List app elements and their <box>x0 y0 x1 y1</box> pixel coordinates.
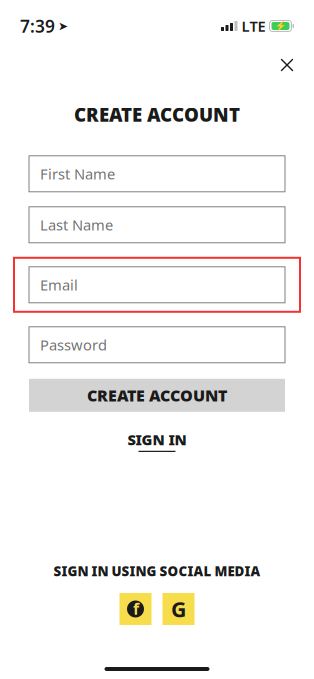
staticText: G <box>171 595 186 623</box>
staticText: SIGN IN USING SOCIAL MEDIA <box>53 562 260 580</box>
staticText: Email <box>40 275 78 295</box>
staticText: ⚡ <box>274 21 286 31</box>
button[interactable]: CREATE ACCOUNT <box>29 379 285 412</box>
staticText: First Name <box>40 164 115 184</box>
staticText: SIGN IN <box>127 430 186 449</box>
staticText: 7:39 <box>20 14 55 37</box>
staticText: LTE <box>241 16 265 36</box>
staticText: CREATE ACCOUNT <box>74 102 240 127</box>
staticText: CREATE ACCOUNT <box>87 385 227 406</box>
button[interactable]: SIGN IN <box>127 430 186 452</box>
staticText: Last Name <box>40 215 113 235</box>
button[interactable]: Sign in with Google <box>162 593 194 625</box>
button[interactable]: Sign in with Facebook <box>119 593 151 625</box>
staticText: f <box>133 598 139 619</box>
staticText: ➤ <box>58 19 68 33</box>
staticText: Password <box>40 335 107 355</box>
button[interactable]: Close <box>272 50 302 80</box>
